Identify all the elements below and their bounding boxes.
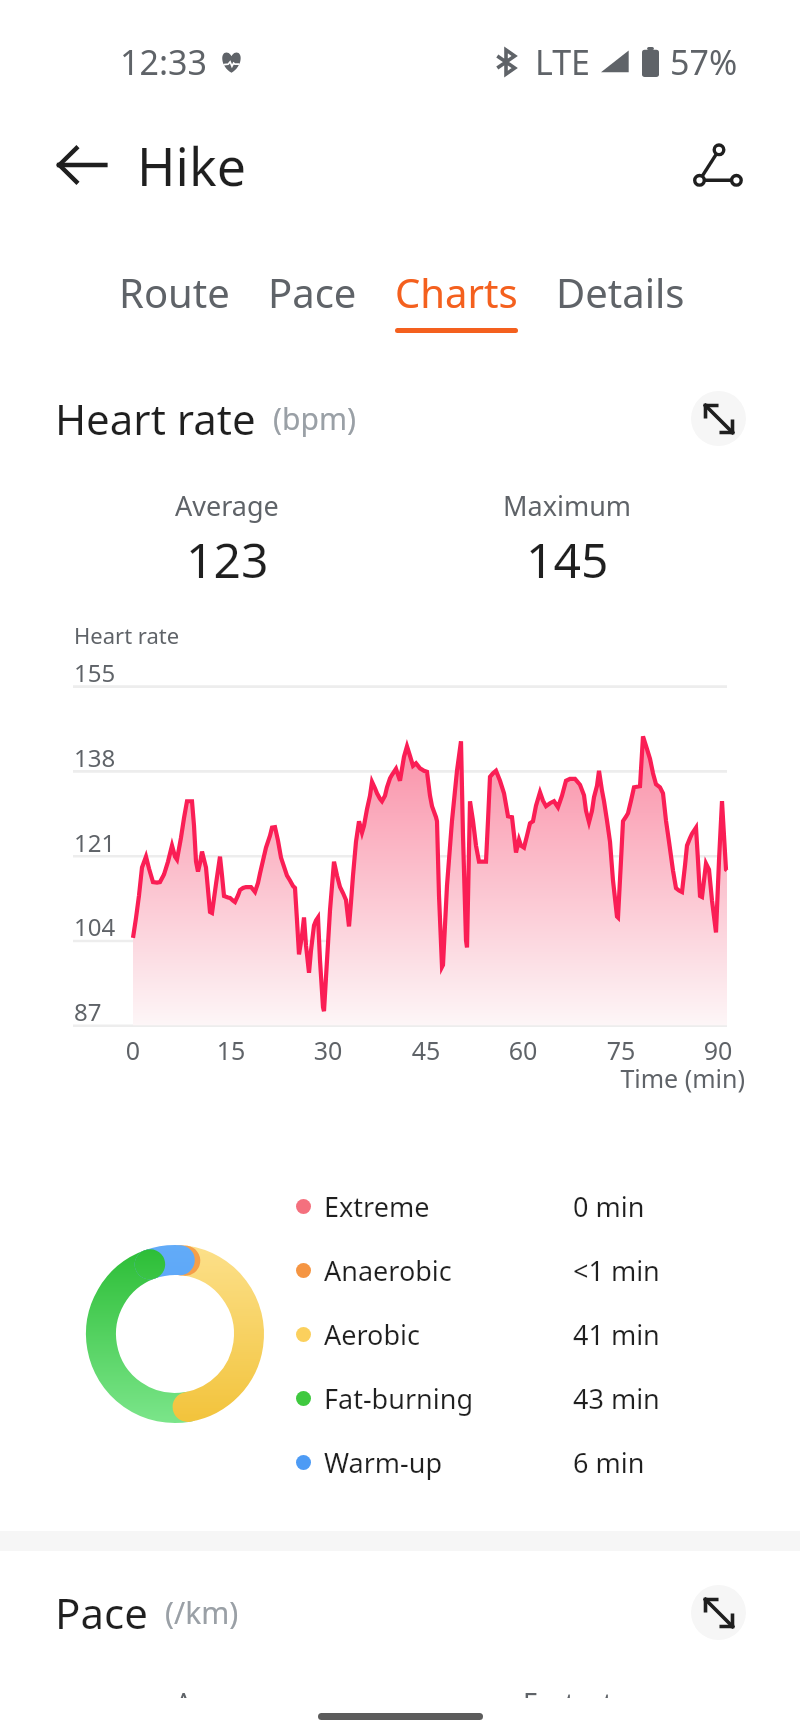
staticText: 43 min [573, 1380, 660, 1417]
staticText: (/km) [165, 1592, 239, 1633]
staticText: 155 [74, 656, 116, 689]
staticText: Aerobic [324, 1316, 420, 1353]
staticText: Time (min) [0, 1061, 745, 1095]
button[interactable]: Fat-burning [296, 1366, 719, 1430]
staticText: 145 [526, 527, 609, 592]
staticText: 45 [386, 1033, 466, 1067]
button[interactable]: Back [48, 136, 106, 194]
staticText: Average [175, 1684, 279, 1698]
staticText: 138 [74, 741, 116, 774]
button[interactable]: Charts [376, 265, 537, 333]
staticText: Pace [55, 1584, 148, 1641]
staticText: Hike [137, 130, 247, 201]
staticText: Route [119, 265, 230, 319]
staticText: Details [556, 265, 685, 319]
staticText: 0 min [573, 1188, 645, 1225]
button[interactable]: Details [537, 265, 704, 333]
staticText: 6 min [573, 1444, 645, 1481]
staticText: Heart rate [74, 620, 180, 650]
button[interactable]: Share [686, 133, 750, 197]
staticText: Extreme [324, 1188, 430, 1225]
staticText: <1 min [573, 1252, 660, 1289]
staticText: 12:33 [120, 39, 207, 85]
staticText: Charts [395, 265, 518, 319]
staticText: Anaerobic [324, 1252, 452, 1289]
staticText: 90 [678, 1033, 758, 1067]
staticText: 123 [186, 527, 269, 592]
staticText: 41 min [573, 1316, 660, 1353]
button[interactable]: Expand chart [691, 1585, 746, 1640]
button[interactable]: Aerobic [296, 1302, 719, 1366]
staticText: 30 [288, 1033, 368, 1067]
staticText: Average [175, 487, 279, 524]
staticText: 75 [581, 1033, 661, 1067]
staticText: 0 [93, 1033, 173, 1067]
staticText: Pace [268, 265, 357, 319]
staticText: 104 [74, 910, 116, 943]
staticText: Fat-burning [324, 1380, 473, 1417]
staticText: 121 [74, 826, 116, 859]
staticText: Heart rate [55, 390, 256, 447]
staticText: 57% [670, 39, 738, 85]
staticText: (bpm) [273, 398, 356, 439]
button[interactable]: Pace [249, 265, 376, 333]
staticText: 60 [483, 1033, 563, 1067]
button[interactable]: Warm-up [296, 1430, 719, 1494]
staticText: Fastest [523, 1684, 613, 1698]
button[interactable]: Route [100, 265, 249, 333]
button[interactable]: Anaerobic [296, 1238, 719, 1302]
button[interactable]: Extreme [296, 1174, 719, 1238]
staticText: Warm-up [324, 1444, 443, 1481]
button[interactable]: Expand chart [691, 391, 746, 446]
staticText: 87 [74, 995, 102, 1028]
staticText: 15 [191, 1033, 271, 1067]
staticText: Maximum [503, 487, 632, 524]
staticText: LTE [535, 39, 590, 85]
